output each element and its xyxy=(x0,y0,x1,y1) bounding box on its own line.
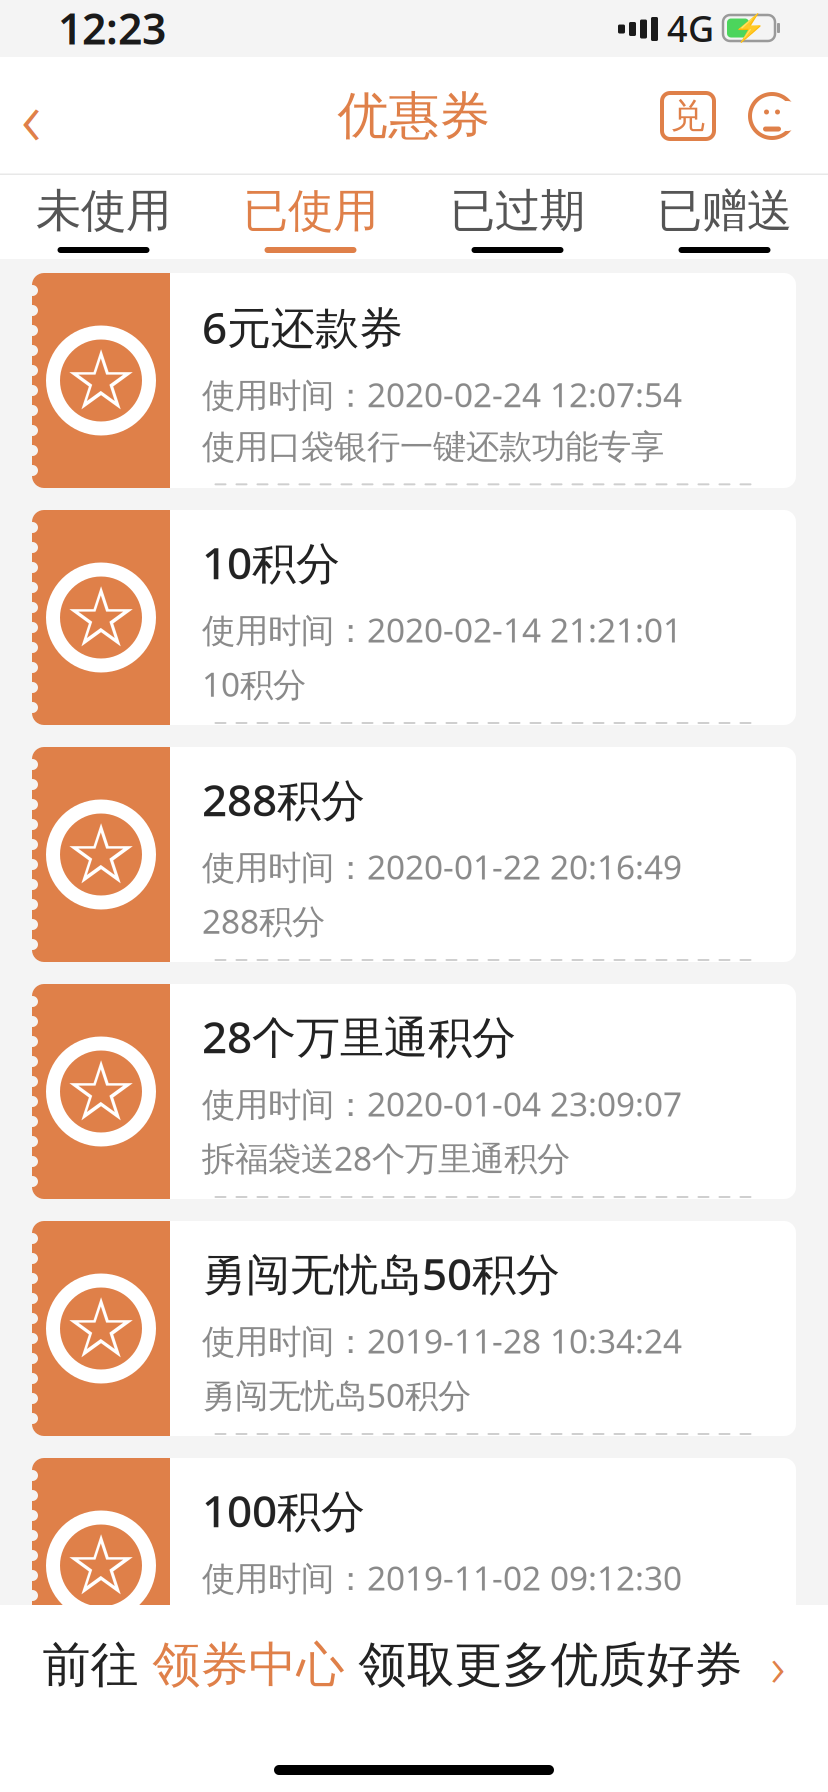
button[interactable]: ★ xyxy=(32,984,796,1199)
staticText: › xyxy=(770,1628,785,1702)
staticText: 勇闯无忧岛50积分 xyxy=(202,1373,471,1417)
staticText: 使用时间：2020-02-24 12:07:54 xyxy=(202,372,682,416)
staticText: ★ xyxy=(64,1519,138,1612)
button[interactable]: 已过期 xyxy=(414,175,621,259)
staticText: 12:23 xyxy=(58,0,166,56)
staticText: 使用时间：2020-02-14 21:21:01 xyxy=(202,607,682,652)
staticText: ★ xyxy=(74,1058,127,1125)
staticText: 使用时间：2019-11-28 10:34:24 xyxy=(202,1318,682,1363)
staticText: 优惠券 xyxy=(337,85,490,147)
button[interactable]: ★ xyxy=(32,510,796,725)
staticText: 领券中心 xyxy=(152,1635,344,1694)
staticText: 288积分 xyxy=(202,899,325,943)
button[interactable]: 未使用 xyxy=(0,175,207,259)
staticText: 兑 xyxy=(670,95,705,137)
button[interactable]: 已使用 xyxy=(207,175,414,259)
staticText: 前往 xyxy=(42,1635,152,1694)
staticText: ‹ xyxy=(21,65,41,167)
staticText: ★ xyxy=(74,821,127,888)
staticText: 拆福袋送28个万里通积分 xyxy=(202,1136,570,1180)
staticText: 已赠送 xyxy=(657,183,792,239)
button[interactable]: ★ xyxy=(32,1458,796,1673)
button[interactable]: ★ xyxy=(32,747,796,962)
staticText: 使用时间：2020-01-04 23:09:07 xyxy=(202,1081,682,1126)
staticText: 勇闯无忧岛50积分 xyxy=(202,1244,560,1302)
staticText: 使用时间：2020-01-22 20:16:49 xyxy=(202,844,682,889)
staticText: 领取更多优质好券 xyxy=(344,1635,770,1694)
staticText: ★ xyxy=(74,584,127,651)
staticText: 100积分 xyxy=(202,1481,365,1539)
staticText: 10积分 xyxy=(202,533,340,591)
staticText: 使用口袋银行一键还款功能专享 xyxy=(202,426,664,467)
staticText: 28个万里通积分 xyxy=(202,1007,516,1065)
staticText: ★ xyxy=(74,1295,127,1362)
staticText: ★ xyxy=(64,1282,138,1375)
button[interactable]: 客服 xyxy=(730,61,814,171)
staticText: 使用时间：2019-11-02 09:12:30 xyxy=(202,1555,682,1600)
staticText: 10积分 xyxy=(202,662,306,706)
staticText: ★ xyxy=(64,808,138,901)
staticText: ★ xyxy=(64,334,138,427)
button[interactable]: 兑换 xyxy=(646,61,730,171)
staticText: 已过期 xyxy=(450,183,585,239)
staticText: ★ xyxy=(64,571,138,664)
staticText: 6元还款券 xyxy=(202,298,403,356)
staticText: 已使用 xyxy=(243,183,378,239)
staticText: 288积分 xyxy=(202,770,365,828)
staticText: 4G xyxy=(667,4,714,52)
button[interactable]: 已赠送 xyxy=(621,175,828,259)
staticText: ★ xyxy=(64,1045,138,1138)
staticText: ⚡ xyxy=(732,13,765,43)
staticText: 100积分 xyxy=(202,1610,325,1654)
button[interactable]: ★ xyxy=(32,273,796,488)
staticText: ★ xyxy=(74,1532,127,1599)
staticText: ★ xyxy=(74,347,127,414)
button[interactable]: ★ xyxy=(32,1221,796,1436)
button[interactable]: 返回 xyxy=(0,61,76,171)
staticText: 未使用 xyxy=(36,183,171,239)
button[interactable]: 前往 xyxy=(0,1605,828,1725)
